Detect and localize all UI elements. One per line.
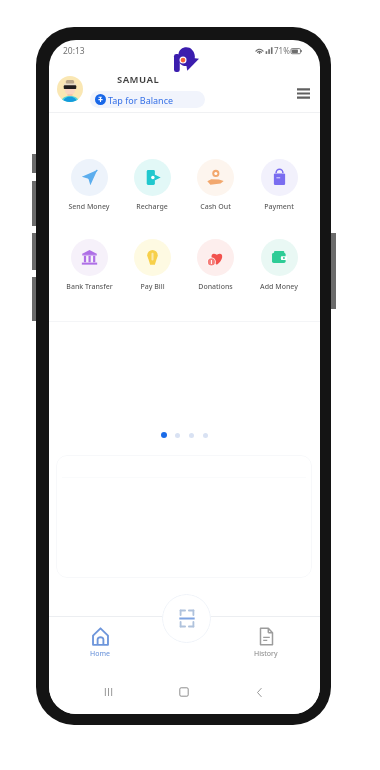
button[interactable]: Donations — [184, 239, 246, 297]
button[interactable]: Scan QR code — [162, 594, 211, 643]
button[interactable]: Cash Out — [184, 159, 246, 217]
button[interactable]: Home — [78, 627, 122, 665]
button[interactable]: Recharge — [121, 159, 183, 217]
staticText: Recharge — [136, 202, 168, 212]
staticText: Tap for Balance — [108, 94, 174, 106]
staticText: Add Money — [260, 282, 298, 292]
staticText: Payment — [264, 202, 294, 212]
button[interactable]: Tap for Balance — [90, 91, 205, 108]
button[interactable]: Payment — [248, 159, 310, 217]
button[interactable]: Bank Transfer — [58, 239, 120, 297]
button[interactable]: Menu — [291, 81, 315, 105]
button[interactable]: Profile — [57, 76, 83, 102]
button[interactable]: Add Money — [248, 239, 310, 297]
staticText: 71% — [274, 45, 290, 56]
staticText: Pay Bill — [140, 282, 165, 292]
staticText: Donations — [198, 282, 233, 292]
staticText: 20:13 — [63, 45, 85, 57]
staticText: Cash Out — [200, 202, 231, 212]
staticText: History — [254, 649, 278, 659]
staticText: Send Money — [68, 202, 110, 212]
staticText: Bank Transfer — [66, 282, 113, 292]
button[interactable]: Send Money — [58, 159, 120, 217]
staticText: Home — [90, 649, 110, 659]
button[interactable]: Pay Bill — [121, 239, 183, 297]
staticText: SAMUAL — [117, 73, 160, 86]
button[interactable]: History — [244, 627, 288, 665]
